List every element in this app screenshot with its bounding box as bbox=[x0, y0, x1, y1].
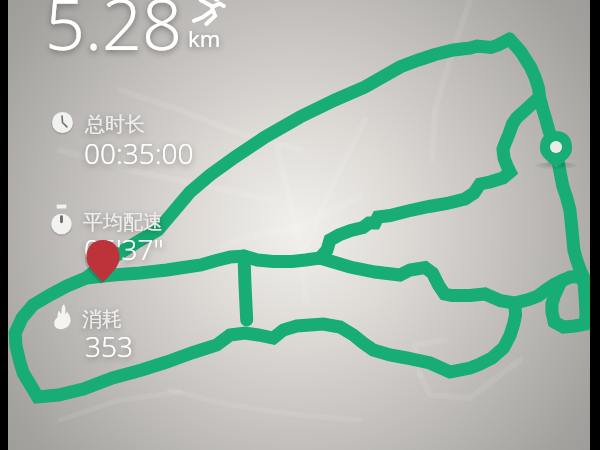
staticText: 06'37" bbox=[84, 230, 164, 268]
staticText: 消耗 bbox=[82, 307, 122, 332]
staticText: 平均配速 bbox=[83, 210, 163, 235]
staticText: 353 bbox=[85, 327, 133, 365]
staticText: 总时长 bbox=[85, 112, 145, 137]
staticText: 5.28 bbox=[45, 0, 182, 70]
staticText: 00:35:00 bbox=[84, 134, 194, 172]
staticText: km bbox=[188, 23, 221, 53]
